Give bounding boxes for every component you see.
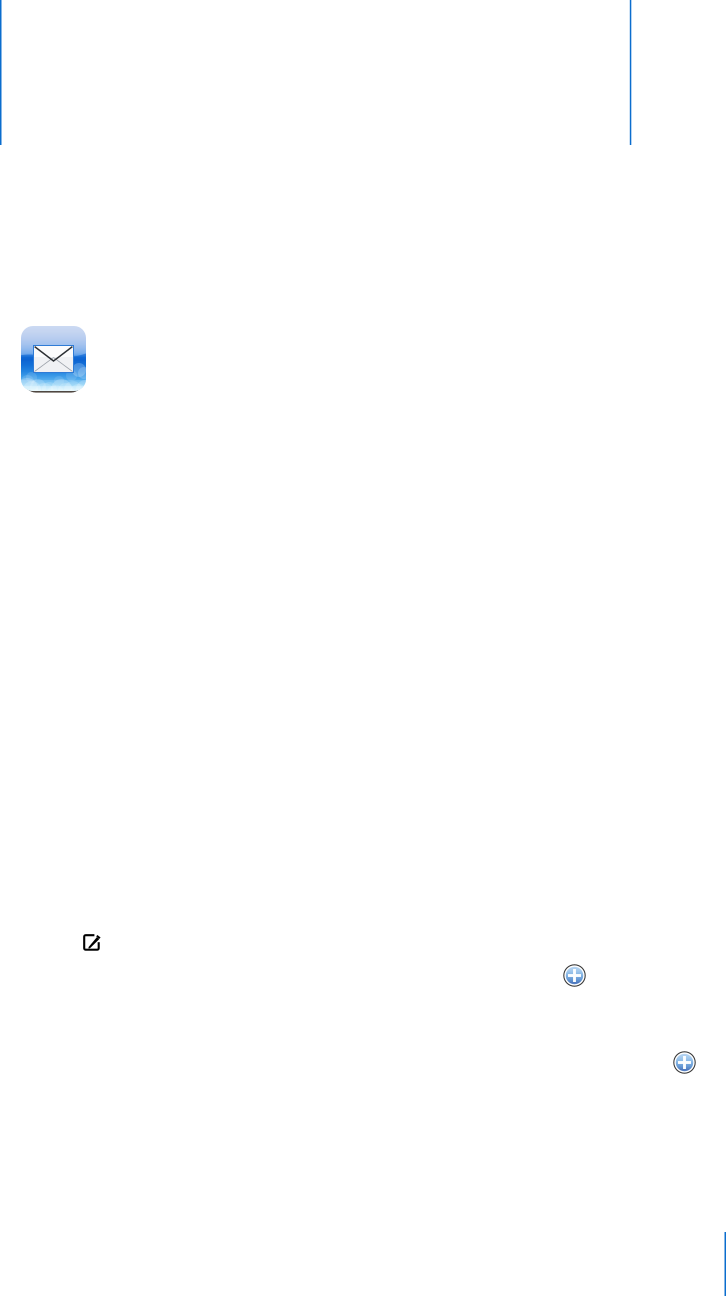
button[interactable]: Add	[563, 964, 586, 987]
button[interactable]: Add	[673, 1051, 696, 1074]
button[interactable]: Mail	[21, 326, 86, 393]
button[interactable]: Compose	[83, 934, 101, 952]
